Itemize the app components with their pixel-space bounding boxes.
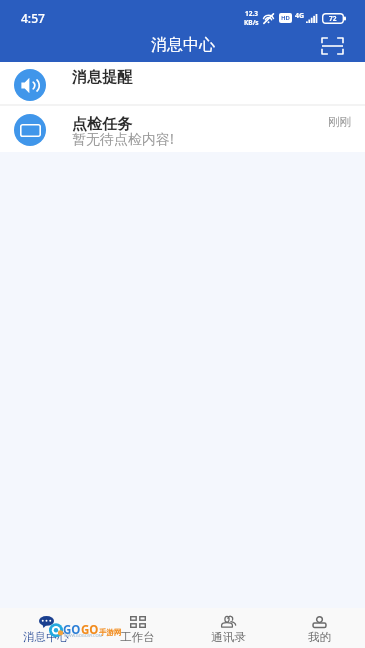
staticText: HD [281,14,290,22]
staticText: WWW.GOGOSY.COM [64,633,103,638]
staticText: 刚刚 [328,115,351,129]
button[interactable]: 点检任务 [0,106,365,152]
staticText: GO [81,622,99,638]
staticText: 暂无待点检内容! [72,129,174,148]
staticText: 通讯录 [211,630,246,644]
staticText: 工作台 [120,630,155,644]
staticText: 4G [295,11,305,21]
staticText: 消息中心 [151,35,215,55]
staticText: 手游网 [99,628,122,637]
staticText: 72 [329,14,337,23]
staticText: 12.3 [245,9,258,18]
button[interactable]: 我的 [274,608,365,648]
button[interactable]: 工作台 [92,608,183,648]
staticText: 消息中心 [23,630,69,644]
staticText: 我的 [308,630,331,644]
staticText: KB/s [244,18,259,27]
button[interactable]: Scan QR code [315,27,349,61]
button[interactable]: 消息提醒 [0,62,365,106]
staticText: 4:57 [21,10,45,26]
staticText: 点检任务 [72,115,132,134]
button[interactable]: 通讯录 [183,608,274,648]
staticText: GO [63,622,81,638]
staticText: 消息提醒 [72,68,132,87]
button[interactable]: 消息中心 [0,608,92,648]
